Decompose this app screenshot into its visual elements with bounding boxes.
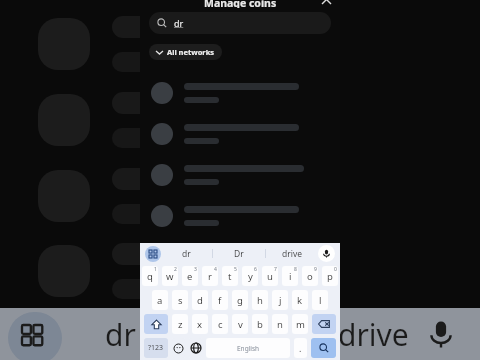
staticText: o [307,270,313,283]
staticText: 8 [294,266,297,273]
button[interactable]: Voice input [318,245,335,262]
button[interactable]: Apps [8,312,62,360]
staticText: 5 [234,266,237,273]
staticText: 7 [274,266,277,273]
staticText: Dr [234,248,244,260]
staticText: 6 [254,266,257,273]
staticText: p [327,270,333,283]
staticText: 0 [334,266,337,273]
button[interactable]: f [212,290,228,310]
button[interactable]: x [192,314,208,334]
staticText: a [157,294,163,307]
staticText: d [197,294,203,307]
button[interactable]: o [302,266,318,286]
button[interactable]: v [232,314,248,334]
staticText: t [228,270,232,283]
staticText: dr [182,248,191,260]
button[interactable]: e [182,266,198,286]
button[interactable]: h [252,290,268,310]
button[interactable]: Dr [213,243,265,264]
staticText: dr [105,314,136,355]
button[interactable]: c [212,314,228,334]
staticText: m [296,318,305,331]
button[interactable]: Backspace [312,314,336,334]
button[interactable]: n [272,314,288,334]
button[interactable]: w [162,266,178,286]
staticText: b [257,318,263,331]
button[interactable]: g [232,290,248,310]
button[interactable]: l [312,290,328,310]
staticText: 4 [214,266,217,273]
button[interactable]: Change language [189,338,202,358]
staticText: All networks [167,47,215,57]
staticText: x [197,318,203,331]
staticText: 9 [314,266,317,273]
staticText: g [237,294,243,307]
button[interactable]: a [152,290,168,310]
button[interactable]: Search [311,338,336,358]
button[interactable]: . [294,338,307,358]
button[interactable]: r [202,266,218,286]
button[interactable]: dr [149,12,331,34]
staticText: 3 [194,266,197,273]
staticText: i [289,270,292,283]
button[interactable]: Emoji [172,338,185,358]
button[interactable]: p [322,266,338,286]
button[interactable]: b [252,314,268,334]
staticText: h [257,294,263,307]
staticText: 2 [174,266,177,273]
staticText: drive [338,314,409,355]
staticText: ?123 [148,343,164,353]
button[interactable]: k [292,290,308,310]
staticText: 1 [154,266,157,273]
button[interactable]: Voice input [424,317,458,351]
staticText: r [208,270,212,283]
staticText: z [178,318,183,331]
button[interactable]: s [172,290,188,310]
button[interactable]: z [172,314,188,334]
staticText: Manage coins [204,0,277,8]
button[interactable]: Toolbar [145,246,161,262]
staticText: u [267,270,273,283]
staticText: dr [174,17,184,29]
button[interactable]: y [242,266,258,286]
button[interactable]: Shift [144,314,168,334]
staticText: n [277,318,283,331]
staticText: w [166,270,174,283]
staticText: v [238,318,243,331]
staticText: e [187,270,193,283]
staticText: q [147,270,153,283]
button[interactable]: dr [161,243,212,264]
button[interactable]: All networks [149,44,222,60]
staticText: f [218,294,222,307]
staticText: . [299,342,302,354]
staticText: j [279,294,282,307]
button[interactable]: ?123 [144,338,168,358]
button[interactable]: q [142,266,158,286]
staticText: s [178,294,183,307]
staticText: k [297,294,303,307]
button[interactable]: d [192,290,208,310]
button[interactable]: English [206,338,290,358]
button[interactable]: t [222,266,238,286]
staticText: English [237,344,260,353]
button[interactable]: Close [318,0,334,5]
staticText: l [319,294,322,307]
button[interactable]: m [292,314,308,334]
staticText: drive [282,248,303,260]
button[interactable]: drive [266,243,318,264]
staticText: c [218,318,223,331]
button[interactable]: j [272,290,288,310]
button[interactable]: i [282,266,298,286]
staticText: y [248,270,253,283]
button[interactable]: u [262,266,278,286]
